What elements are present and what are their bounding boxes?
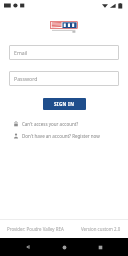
other: Register now [13, 133, 19, 139]
button[interactable]: Home [56, 239, 72, 255]
button[interactable]: Back [20, 239, 36, 255]
staticText: Password [14, 75, 38, 82]
staticText: Email [14, 49, 28, 56]
button[interactable]: SIGN IN [43, 98, 86, 110]
button[interactable]: Email [9, 45, 119, 60]
button[interactable]: Recents [92, 239, 108, 255]
staticText: Version custom 2.0 [81, 226, 121, 232]
staticText: Can't access your account? [22, 121, 79, 127]
staticText: Don't have an account? Register now [22, 133, 100, 139]
staticText: SIGN IN [54, 101, 75, 107]
other: Can't access your account [13, 121, 19, 127]
staticText: Provider: Poudre Valley REA [7, 226, 64, 232]
button[interactable]: Register now [0, 131, 128, 140]
button[interactable]: Can't access your account [0, 119, 128, 128]
button[interactable]: Password [9, 71, 119, 86]
